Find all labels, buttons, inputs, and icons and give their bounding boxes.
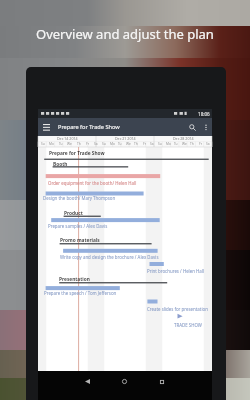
staticText: Mo xyxy=(166,142,171,146)
staticText: Prepare samples / Alex Davis xyxy=(48,223,108,229)
staticText: We xyxy=(126,142,131,146)
button[interactable]: More options xyxy=(200,118,212,136)
button[interactable]: Search xyxy=(184,118,200,136)
staticText: Write copy and design the brochure / Ale… xyxy=(60,254,159,260)
staticText: Overview and adjust the plan xyxy=(36,25,214,43)
staticText: Fr xyxy=(86,142,89,146)
staticText: Fr xyxy=(199,142,202,146)
staticText: Th xyxy=(77,142,81,146)
staticText: Tu xyxy=(118,142,122,146)
staticText: Dec 21 2014 xyxy=(115,136,136,141)
staticText: Order equipment for the booth/ Helen Hal… xyxy=(48,180,137,186)
button[interactable]: Navigation menu xyxy=(38,118,55,136)
staticText: Mo xyxy=(49,142,54,146)
staticText: Th xyxy=(190,142,194,146)
staticText: Product xyxy=(64,210,83,217)
staticText: Booth xyxy=(53,161,68,168)
staticText: We xyxy=(67,142,72,146)
staticText: Su xyxy=(158,142,162,146)
staticText: Create slides for presentation xyxy=(147,306,208,312)
staticText: Sa xyxy=(206,142,210,146)
button[interactable]: Back xyxy=(80,374,95,389)
button[interactable]: Recent apps xyxy=(154,374,169,389)
staticText: Tu xyxy=(174,142,178,146)
button[interactable]: Home xyxy=(117,374,132,389)
staticText: Th xyxy=(134,142,138,146)
staticText: Promo materials xyxy=(60,237,100,244)
staticText: We xyxy=(182,142,187,146)
staticText: Sa xyxy=(150,142,154,146)
staticText: Presentation xyxy=(59,276,90,283)
staticText: TRADE SHOW xyxy=(174,322,202,328)
staticText: Fr xyxy=(143,142,146,146)
staticText: Dec 28 2014 xyxy=(173,136,194,141)
staticText: Prepare for Trade Show xyxy=(49,150,105,157)
staticText: Mo xyxy=(110,142,115,146)
staticText: Print brochures / Helen Hall xyxy=(147,268,205,274)
staticText: Prepare the speech / Tom Jefferson xyxy=(44,290,117,296)
staticText: Prepare for Trade Show xyxy=(58,123,120,131)
staticText: Su xyxy=(41,142,45,146)
staticText: Su xyxy=(102,142,106,146)
staticText: 18:06 xyxy=(198,111,210,117)
staticText: Sa xyxy=(94,142,98,146)
staticText: Design the booth/ Mary Thompson xyxy=(43,195,116,201)
staticText: Tu xyxy=(59,142,63,146)
staticText: Dec 14 2014 xyxy=(57,136,78,141)
